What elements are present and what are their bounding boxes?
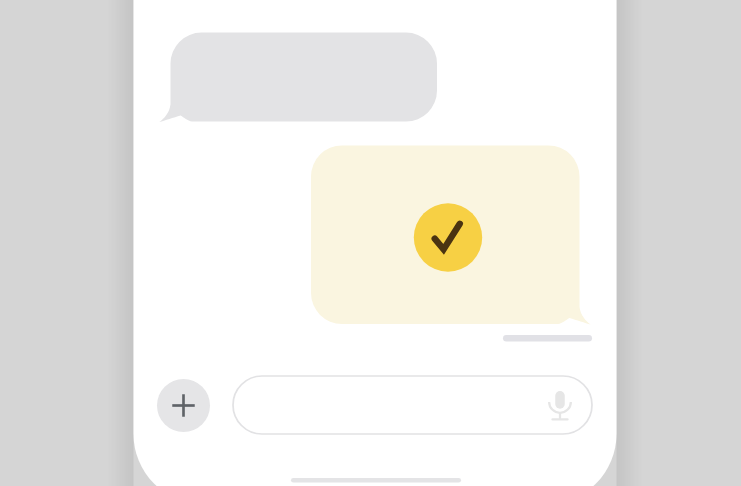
button[interactable]: Add attachment: [157, 379, 210, 432]
button[interactable]: Record voice message: [548, 391, 572, 420]
button[interactable]: Message from contact: [159, 33, 437, 122]
button[interactable]: Your message, delivered: [311, 146, 591, 325]
button[interactable]: Type a message: [233, 376, 592, 434]
